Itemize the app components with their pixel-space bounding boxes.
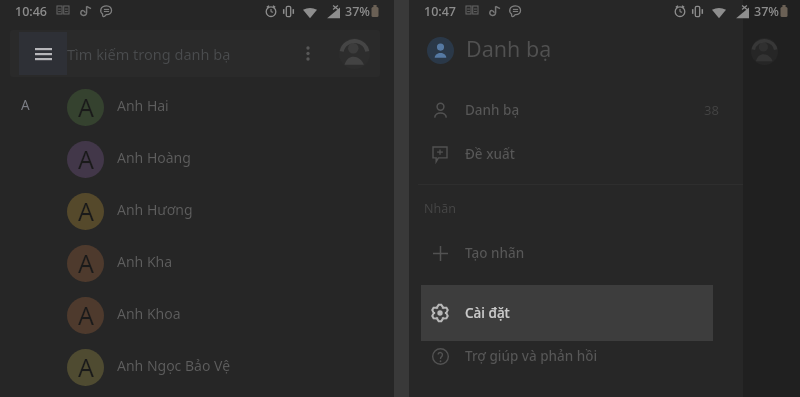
button[interactable]: A [0,185,394,237]
button[interactable]: A [0,289,394,341]
staticText: Anh Khoa [117,304,181,323]
button[interactable]: Tạo nhãn [420,231,736,275]
staticText: Tìm kiếm trong danh bạ [67,44,231,64]
button[interactable]: Open navigation drawer [19,32,67,75]
staticText: A [78,90,94,124]
staticText: 37% [754,3,779,20]
staticText: A [78,142,94,176]
button[interactable]: A [0,237,394,289]
staticText: Anh Ngọc Bảo Vệ [117,356,231,375]
button[interactable]: Account [339,38,370,69]
staticText: Danh bạ [466,34,552,63]
staticText: Đề xuất [465,145,515,163]
staticText: 38 [704,101,719,119]
staticText: A [78,246,94,280]
button[interactable]: A [0,81,394,133]
staticText: 10:46 [15,3,48,20]
staticText: A [78,350,94,384]
staticText: Anh Kha [117,252,173,271]
staticText: Trợ giúp và phản hồi [465,347,598,365]
button[interactable]: More options [296,33,320,73]
staticText: Danh bạ [465,101,520,119]
staticText: Anh Hoàng [117,148,191,167]
staticText: Tạo nhãn [465,244,525,262]
staticText: Anh Hương [117,200,193,219]
button[interactable]: Trợ giúp và phản hồi [420,334,736,378]
staticText: 37% [345,3,370,20]
staticText: Nhãn [424,200,456,217]
button[interactable]: Danh bạ [420,88,736,132]
staticText: A [78,298,94,332]
button[interactable]: A [0,133,394,185]
staticText: A [78,194,94,228]
staticText: Anh Hai [117,96,169,115]
button[interactable]: Đề xuất [420,132,736,176]
button[interactable]: Cài đặt [421,285,713,341]
staticText: A [21,96,30,114]
staticText: 10:47 [424,3,457,20]
button[interactable]: A [0,341,394,393]
staticText: Cài đặt [465,304,510,322]
